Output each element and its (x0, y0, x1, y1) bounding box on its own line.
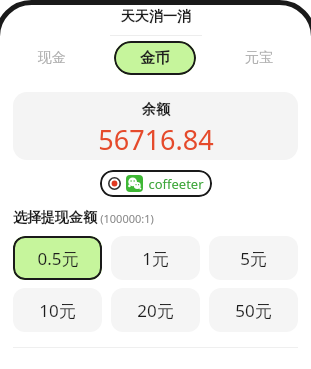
button[interactable]: 余额 (13, 92, 298, 160)
button[interactable]: 0.5元 (13, 236, 102, 280)
staticText: 5元 (240, 247, 267, 270)
other: WeChat (126, 175, 143, 192)
staticText: 20元 (137, 299, 174, 322)
staticText: 0.5元 (37, 247, 79, 270)
staticText: 金币 (140, 49, 170, 68)
staticText: 天天消一消 (121, 8, 191, 26)
staticText: coffeeter (148, 175, 204, 193)
button[interactable]: 金币 (114, 41, 196, 75)
staticText: 余额 (142, 101, 170, 119)
button[interactable]: 元宝 (207, 36, 311, 79)
staticText: 选择提现金额 (13, 209, 97, 227)
button[interactable]: 20元 (111, 288, 200, 332)
button[interactable]: 50元 (209, 288, 298, 332)
staticText: 50元 (235, 299, 272, 322)
button[interactable]: 1元 (111, 236, 200, 280)
button[interactable]: WeChat (100, 170, 212, 197)
staticText: 56716.84 (98, 121, 214, 158)
button[interactable]: 现金 (0, 36, 103, 79)
staticText: 1元 (142, 247, 169, 270)
staticText: 现金 (38, 49, 66, 67)
button[interactable]: 5元 (209, 236, 298, 280)
staticText: 元宝 (245, 49, 273, 67)
staticText: 10元 (39, 299, 76, 322)
button[interactable]: 10元 (13, 288, 102, 332)
staticText: (100000:1) (100, 211, 154, 226)
